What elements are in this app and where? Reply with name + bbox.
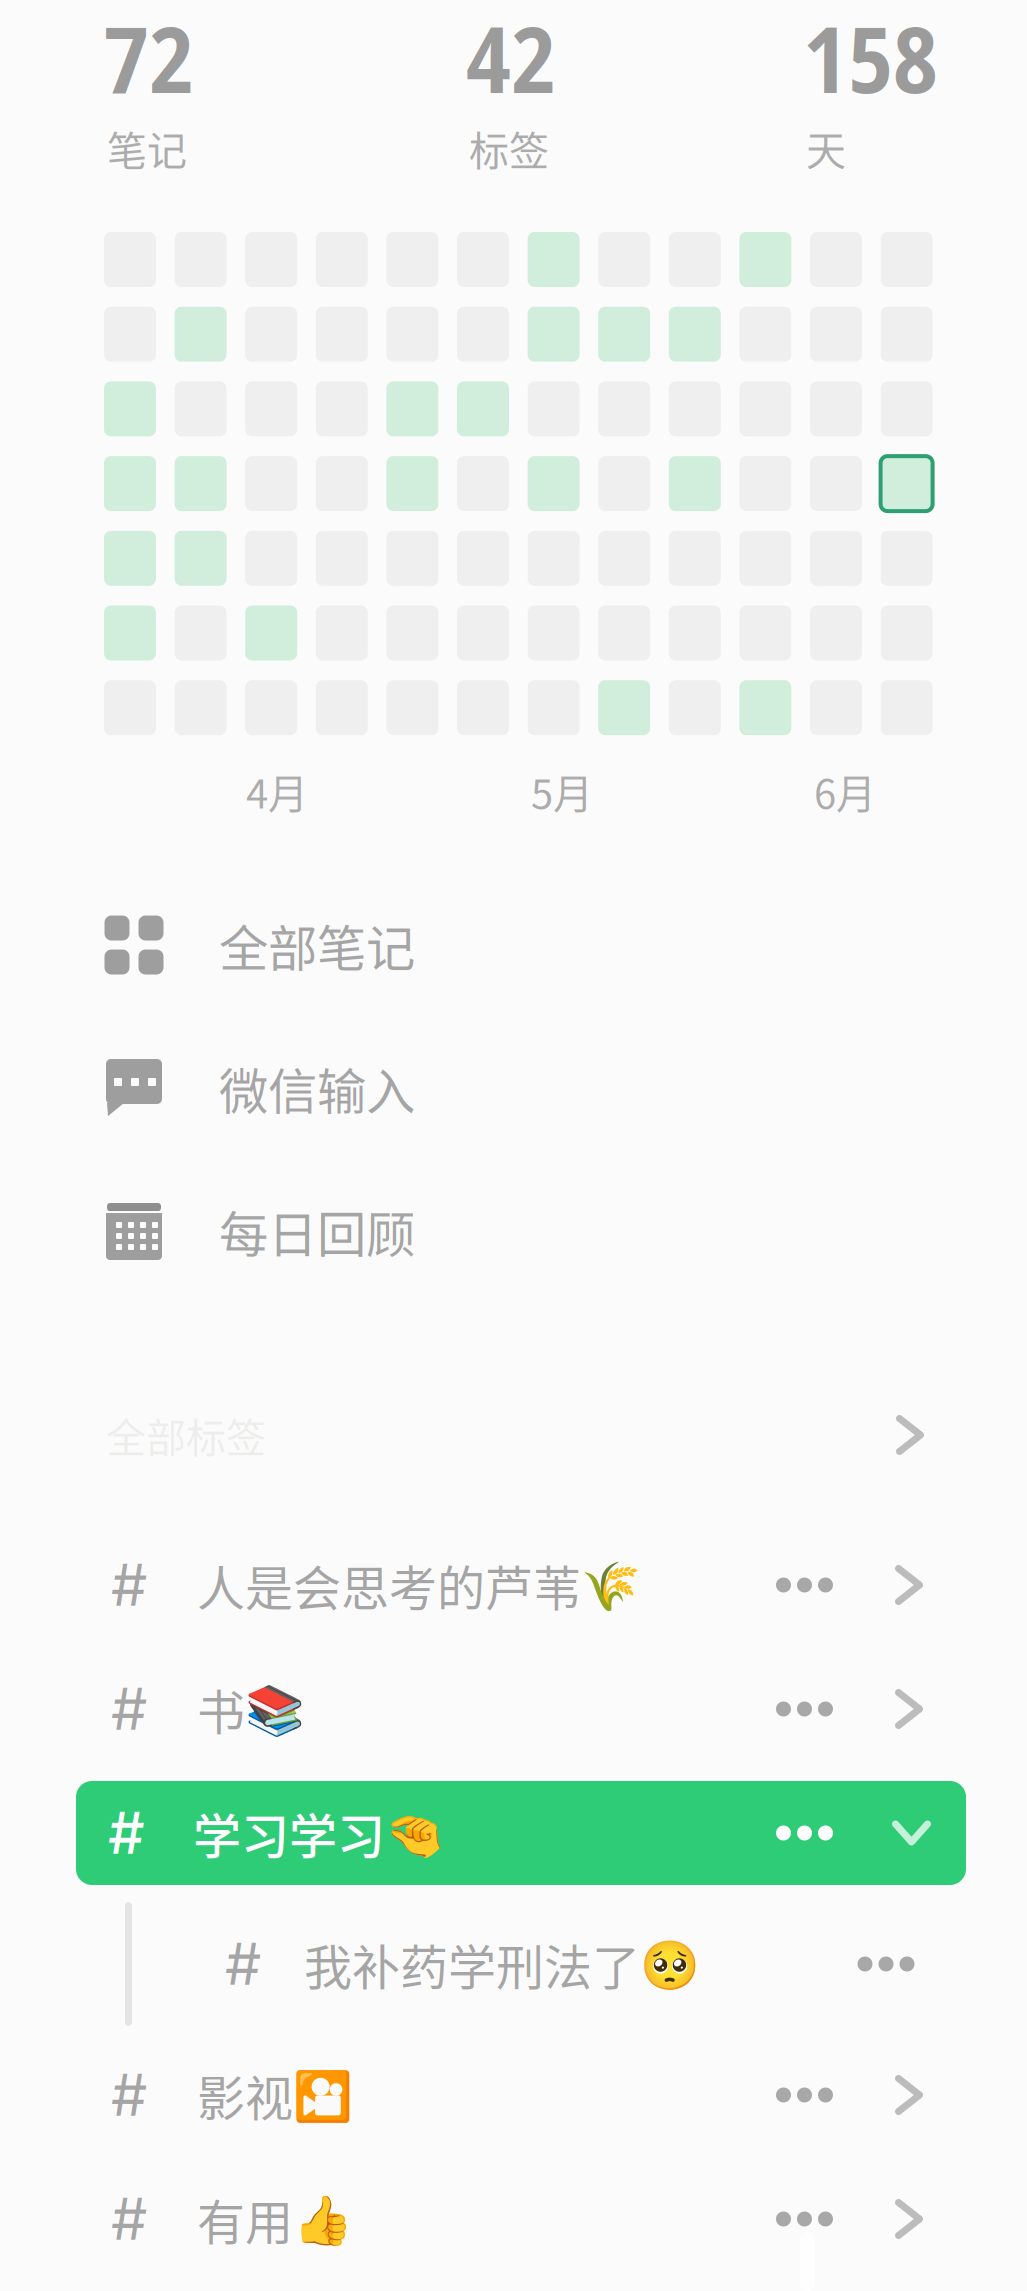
staticText: 全部标签 — [106, 1406, 266, 1464]
button[interactable]: More options for 我补药学刑法了🥺 — [841, 1903, 931, 2025]
staticText: 4月 — [246, 762, 308, 820]
button[interactable]: More options for 书📚 — [760, 1648, 849, 1770]
staticText: 每日回顾 — [219, 1195, 415, 1267]
button[interactable]: Open 有用👍 — [849, 2158, 969, 2280]
staticText: # — [111, 2060, 147, 2130]
staticText: 5月 — [531, 762, 593, 820]
staticText: 有用👍 — [197, 2184, 353, 2254]
staticText: 全部笔记 — [219, 909, 415, 981]
button[interactable]: More options for 影视🎦 — [760, 2034, 849, 2156]
staticText: 影视🎦 — [197, 2060, 353, 2130]
button[interactable]: More options for 人是会思考的芦苇🌾 — [760, 1524, 849, 1646]
staticText: 标签 — [469, 119, 549, 177]
staticText: 72 — [104, 0, 194, 119]
button[interactable]: Open 影视🎦 — [849, 2034, 969, 2156]
staticText: # — [111, 2184, 147, 2254]
button[interactable]: 全部标签 — [0, 1383, 1027, 1487]
button[interactable]: 微信输入 — [0, 1043, 1027, 1133]
button[interactable]: More options for 有用👍 — [760, 2158, 849, 2280]
staticText: # — [225, 1929, 261, 1999]
staticText: # — [111, 1550, 147, 1620]
staticText: 人是会思考的芦苇🌾 — [197, 1550, 641, 1620]
button[interactable]: # — [0, 1648, 760, 1770]
staticText: 学习学习🤏 — [193, 1798, 445, 1868]
button[interactable]: # — [0, 1524, 760, 1646]
staticText: 书📚 — [197, 1674, 305, 1744]
button[interactable]: # — [76, 1781, 966, 1885]
staticText: 笔记 — [107, 119, 187, 177]
staticText: 天 — [806, 119, 846, 177]
staticText: # — [111, 1674, 147, 1744]
button[interactable]: Open 人是会思考的芦苇🌾 — [849, 1524, 969, 1646]
staticText: 我补药学刑法了🥺 — [304, 1929, 700, 1999]
staticText: 42 — [466, 0, 556, 119]
button[interactable]: # — [0, 1903, 841, 2025]
button[interactable]: Open 书📚 — [849, 1648, 969, 1770]
button[interactable]: # — [0, 2158, 760, 2280]
button[interactable]: 全部笔记 — [0, 900, 1027, 990]
staticText: # — [108, 1798, 145, 1868]
staticText: 158 — [803, 0, 938, 119]
button[interactable]: 每日回顾 — [0, 1186, 1027, 1276]
button[interactable]: # — [0, 2034, 760, 2156]
staticText: 微信输入 — [219, 1052, 415, 1124]
staticText: 6月 — [814, 762, 876, 820]
